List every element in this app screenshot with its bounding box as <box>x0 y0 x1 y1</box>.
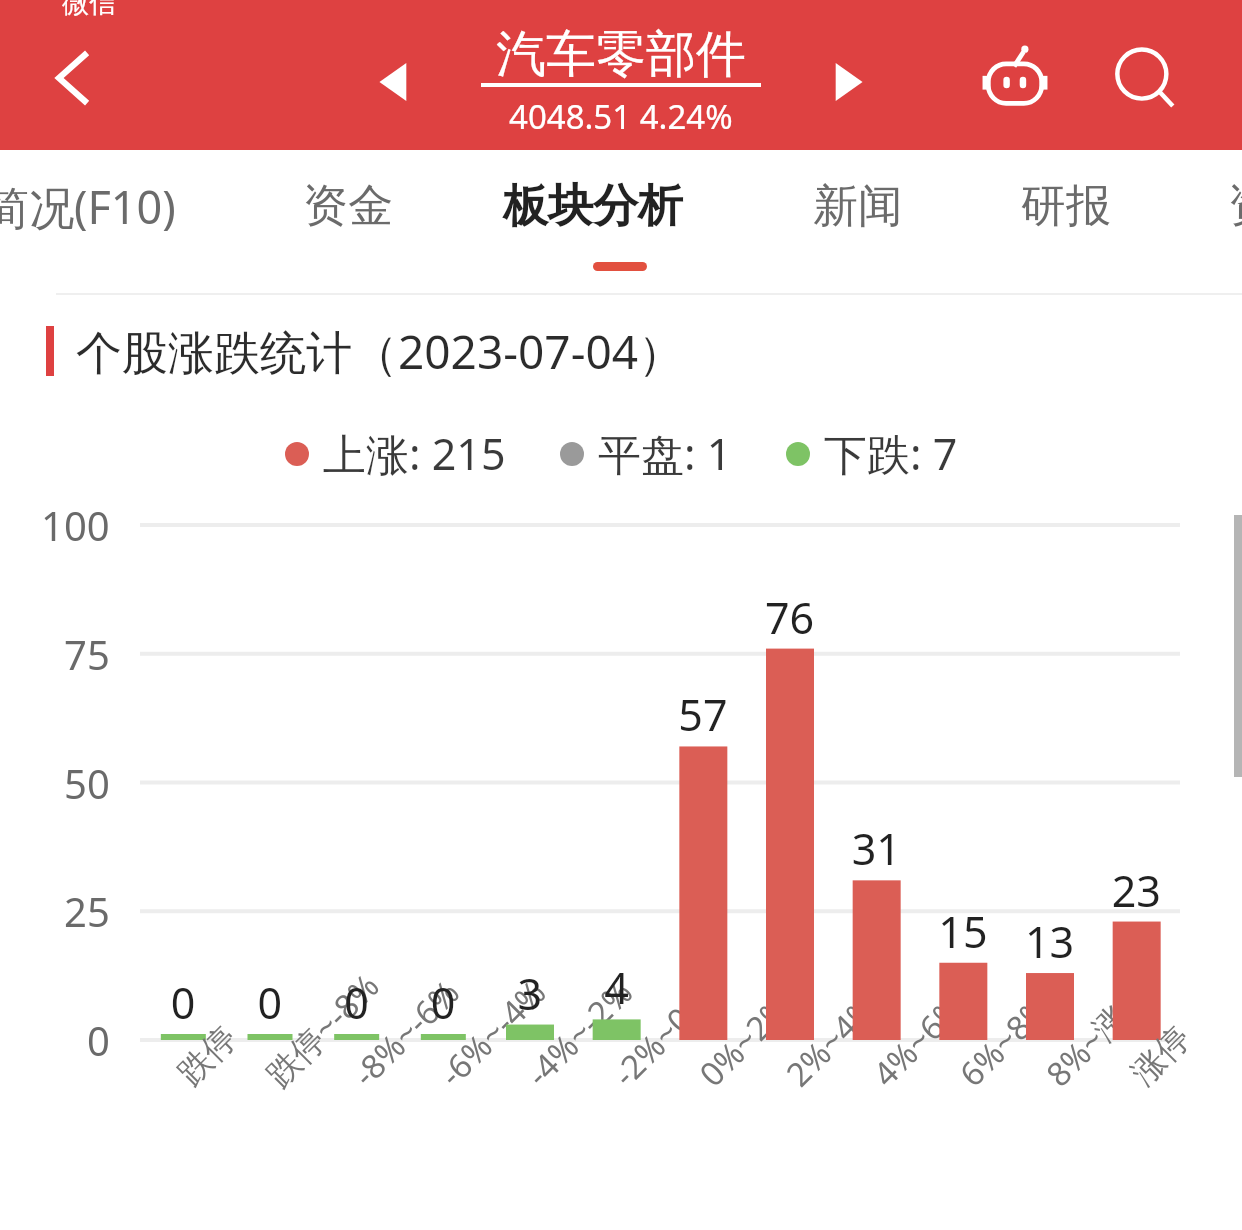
button[interactable]: 板块分析 <box>503 150 683 262</box>
staticText: 汽车零部件 <box>496 23 746 86</box>
button[interactable]: Next sector <box>820 54 876 110</box>
button[interactable]: 上涨: 215 <box>285 424 506 483</box>
staticText: 个股涨跌统计（2023-07-04） <box>76 320 685 383</box>
button[interactable]: 下跌: 7 <box>786 424 958 483</box>
staticText: 新闻 <box>813 178 903 235</box>
staticText: 4048.51 4.24% <box>509 94 733 139</box>
staticText: 板块分析 <box>503 178 683 235</box>
button[interactable]: 研报 <box>1021 150 1111 262</box>
button[interactable]: Search <box>1104 38 1190 124</box>
staticText: 简况(F10) <box>0 176 176 237</box>
button[interactable]: 新闻 <box>813 150 903 262</box>
staticText: 微信 <box>62 0 116 20</box>
staticText: 资 <box>1228 178 1242 235</box>
staticText: 平盘: 1 <box>598 424 732 483</box>
button[interactable]: 资金 <box>303 150 393 262</box>
button[interactable]: Previous sector <box>366 54 422 110</box>
button[interactable]: 简况(F10) <box>0 150 176 262</box>
staticText: 上涨: 215 <box>323 424 506 483</box>
staticText: 研报 <box>1021 178 1111 235</box>
button[interactable]: 资 <box>1228 150 1242 262</box>
button[interactable]: Back <box>40 40 116 116</box>
staticText: 下跌: 7 <box>824 424 958 483</box>
button[interactable]: AI assistant <box>972 38 1058 124</box>
staticText: 资金 <box>303 178 393 235</box>
button[interactable]: 平盘: 1 <box>560 424 732 483</box>
